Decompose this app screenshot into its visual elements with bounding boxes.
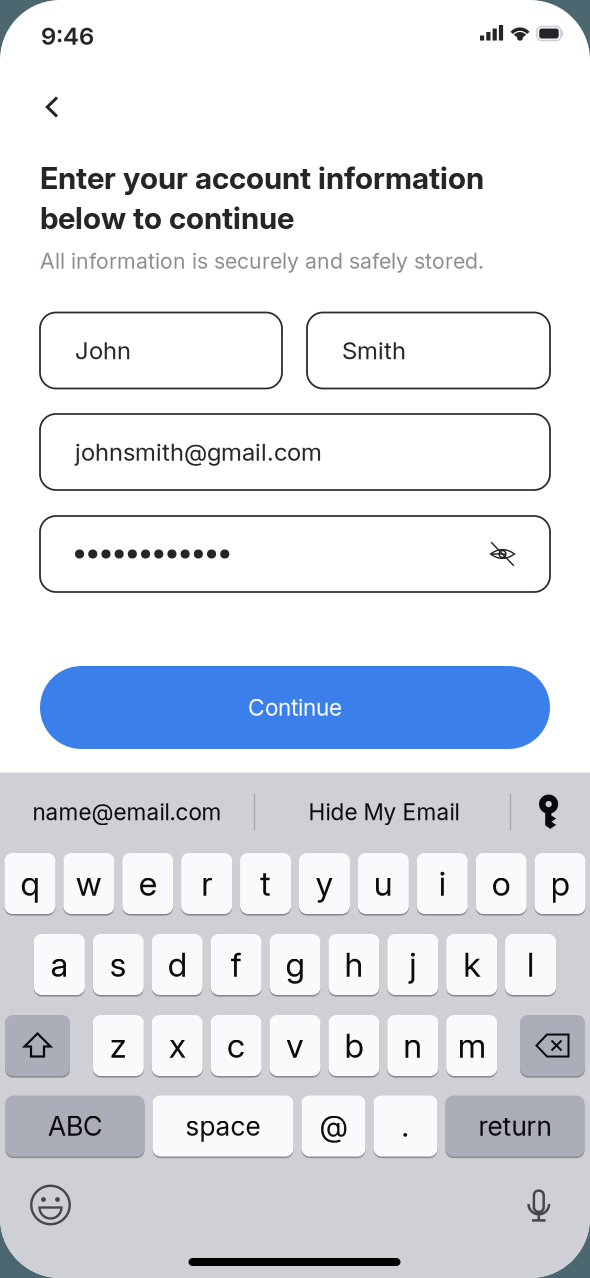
- button[interactable]: @: [301, 1094, 365, 1158]
- button[interactable]: s: [93, 932, 144, 997]
- button[interactable]: Dictation: [524, 1187, 553, 1229]
- staticText: a: [50, 944, 68, 985]
- staticText: r: [201, 863, 212, 904]
- staticText: Smith: [342, 336, 406, 365]
- button[interactable]: j: [387, 932, 438, 997]
- button[interactable]: Show password: [489, 540, 516, 568]
- staticText: g: [285, 944, 304, 985]
- button[interactable]: space: [152, 1094, 293, 1158]
- staticText: v: [286, 1025, 304, 1066]
- button[interactable]: x: [152, 1013, 203, 1078]
- button[interactable]: z: [93, 1013, 144, 1078]
- button[interactable]: f: [211, 932, 262, 997]
- staticText: 9:46: [41, 21, 94, 50]
- button[interactable]: Continue: [40, 666, 550, 749]
- staticText: k: [463, 944, 480, 985]
- staticText: h: [344, 944, 363, 985]
- staticText: o: [492, 863, 511, 904]
- staticText: z: [110, 1025, 127, 1066]
- staticText: @: [319, 1108, 347, 1144]
- button[interactable]: l: [505, 932, 556, 997]
- button[interactable]: y: [299, 851, 350, 916]
- staticText: space: [185, 1110, 260, 1142]
- staticText: m: [458, 1025, 486, 1066]
- staticText: x: [169, 1025, 186, 1066]
- staticText: j: [409, 944, 416, 985]
- button[interactable]: Passwords: [514, 779, 584, 845]
- staticText: w: [76, 863, 102, 904]
- button[interactable]: p: [534, 851, 585, 916]
- button[interactable]: e: [122, 851, 173, 916]
- button[interactable]: a: [34, 932, 85, 997]
- staticText: name@email.com: [32, 798, 221, 826]
- staticText: Enter your account information: [40, 160, 484, 196]
- button[interactable]: w: [63, 851, 114, 916]
- button[interactable]: k: [446, 932, 497, 997]
- button[interactable]: h: [328, 932, 379, 997]
- button[interactable]: .: [373, 1094, 437, 1158]
- staticText: l: [527, 944, 534, 985]
- button[interactable]: g: [269, 932, 320, 997]
- staticText: Hide My Email: [308, 798, 459, 826]
- staticText: p: [550, 863, 569, 904]
- staticText: Continue: [248, 694, 342, 721]
- button[interactable]: o: [476, 851, 527, 916]
- staticText: y: [315, 863, 333, 904]
- staticText: f: [231, 944, 242, 985]
- button[interactable]: Hide My Email: [269, 779, 499, 845]
- button[interactable]: Delete: [520, 1013, 585, 1078]
- staticText: u: [374, 863, 393, 904]
- button[interactable]: Back: [30, 85, 74, 129]
- staticText: return: [478, 1110, 551, 1142]
- staticText: johnsmith@gmail.com: [75, 437, 322, 466]
- button[interactable]: t: [240, 851, 291, 916]
- staticText: ABC: [48, 1110, 102, 1142]
- button[interactable]: u: [358, 851, 409, 916]
- button[interactable]: r: [181, 851, 232, 916]
- button[interactable]: i: [417, 851, 468, 916]
- button[interactable]: ABC: [5, 1094, 144, 1158]
- staticText: John: [75, 336, 131, 365]
- button[interactable]: return: [445, 1094, 584, 1158]
- button[interactable]: v: [269, 1013, 320, 1078]
- staticText: q: [20, 863, 39, 904]
- button[interactable]: c: [211, 1013, 262, 1078]
- staticText: e: [139, 863, 157, 904]
- staticText: .: [401, 1108, 409, 1144]
- staticText: d: [168, 944, 187, 985]
- button[interactable]: d: [152, 932, 203, 997]
- button[interactable]: q: [4, 851, 55, 916]
- staticText: below to continue: [40, 200, 294, 236]
- button[interactable]: name@email.com: [12, 779, 242, 845]
- staticText: b: [344, 1025, 363, 1066]
- staticText: i: [439, 863, 446, 904]
- staticText: All information is securely and safely s…: [40, 248, 484, 274]
- staticText: n: [403, 1025, 422, 1066]
- button[interactable]: n: [387, 1013, 438, 1078]
- button[interactable]: b: [328, 1013, 379, 1078]
- button[interactable]: m: [446, 1013, 497, 1078]
- staticText: c: [227, 1025, 245, 1066]
- staticText: t: [260, 863, 271, 904]
- button[interactable]: Emoji: [29, 1184, 71, 1226]
- staticText: s: [110, 944, 127, 985]
- button[interactable]: Shift: [5, 1013, 70, 1078]
